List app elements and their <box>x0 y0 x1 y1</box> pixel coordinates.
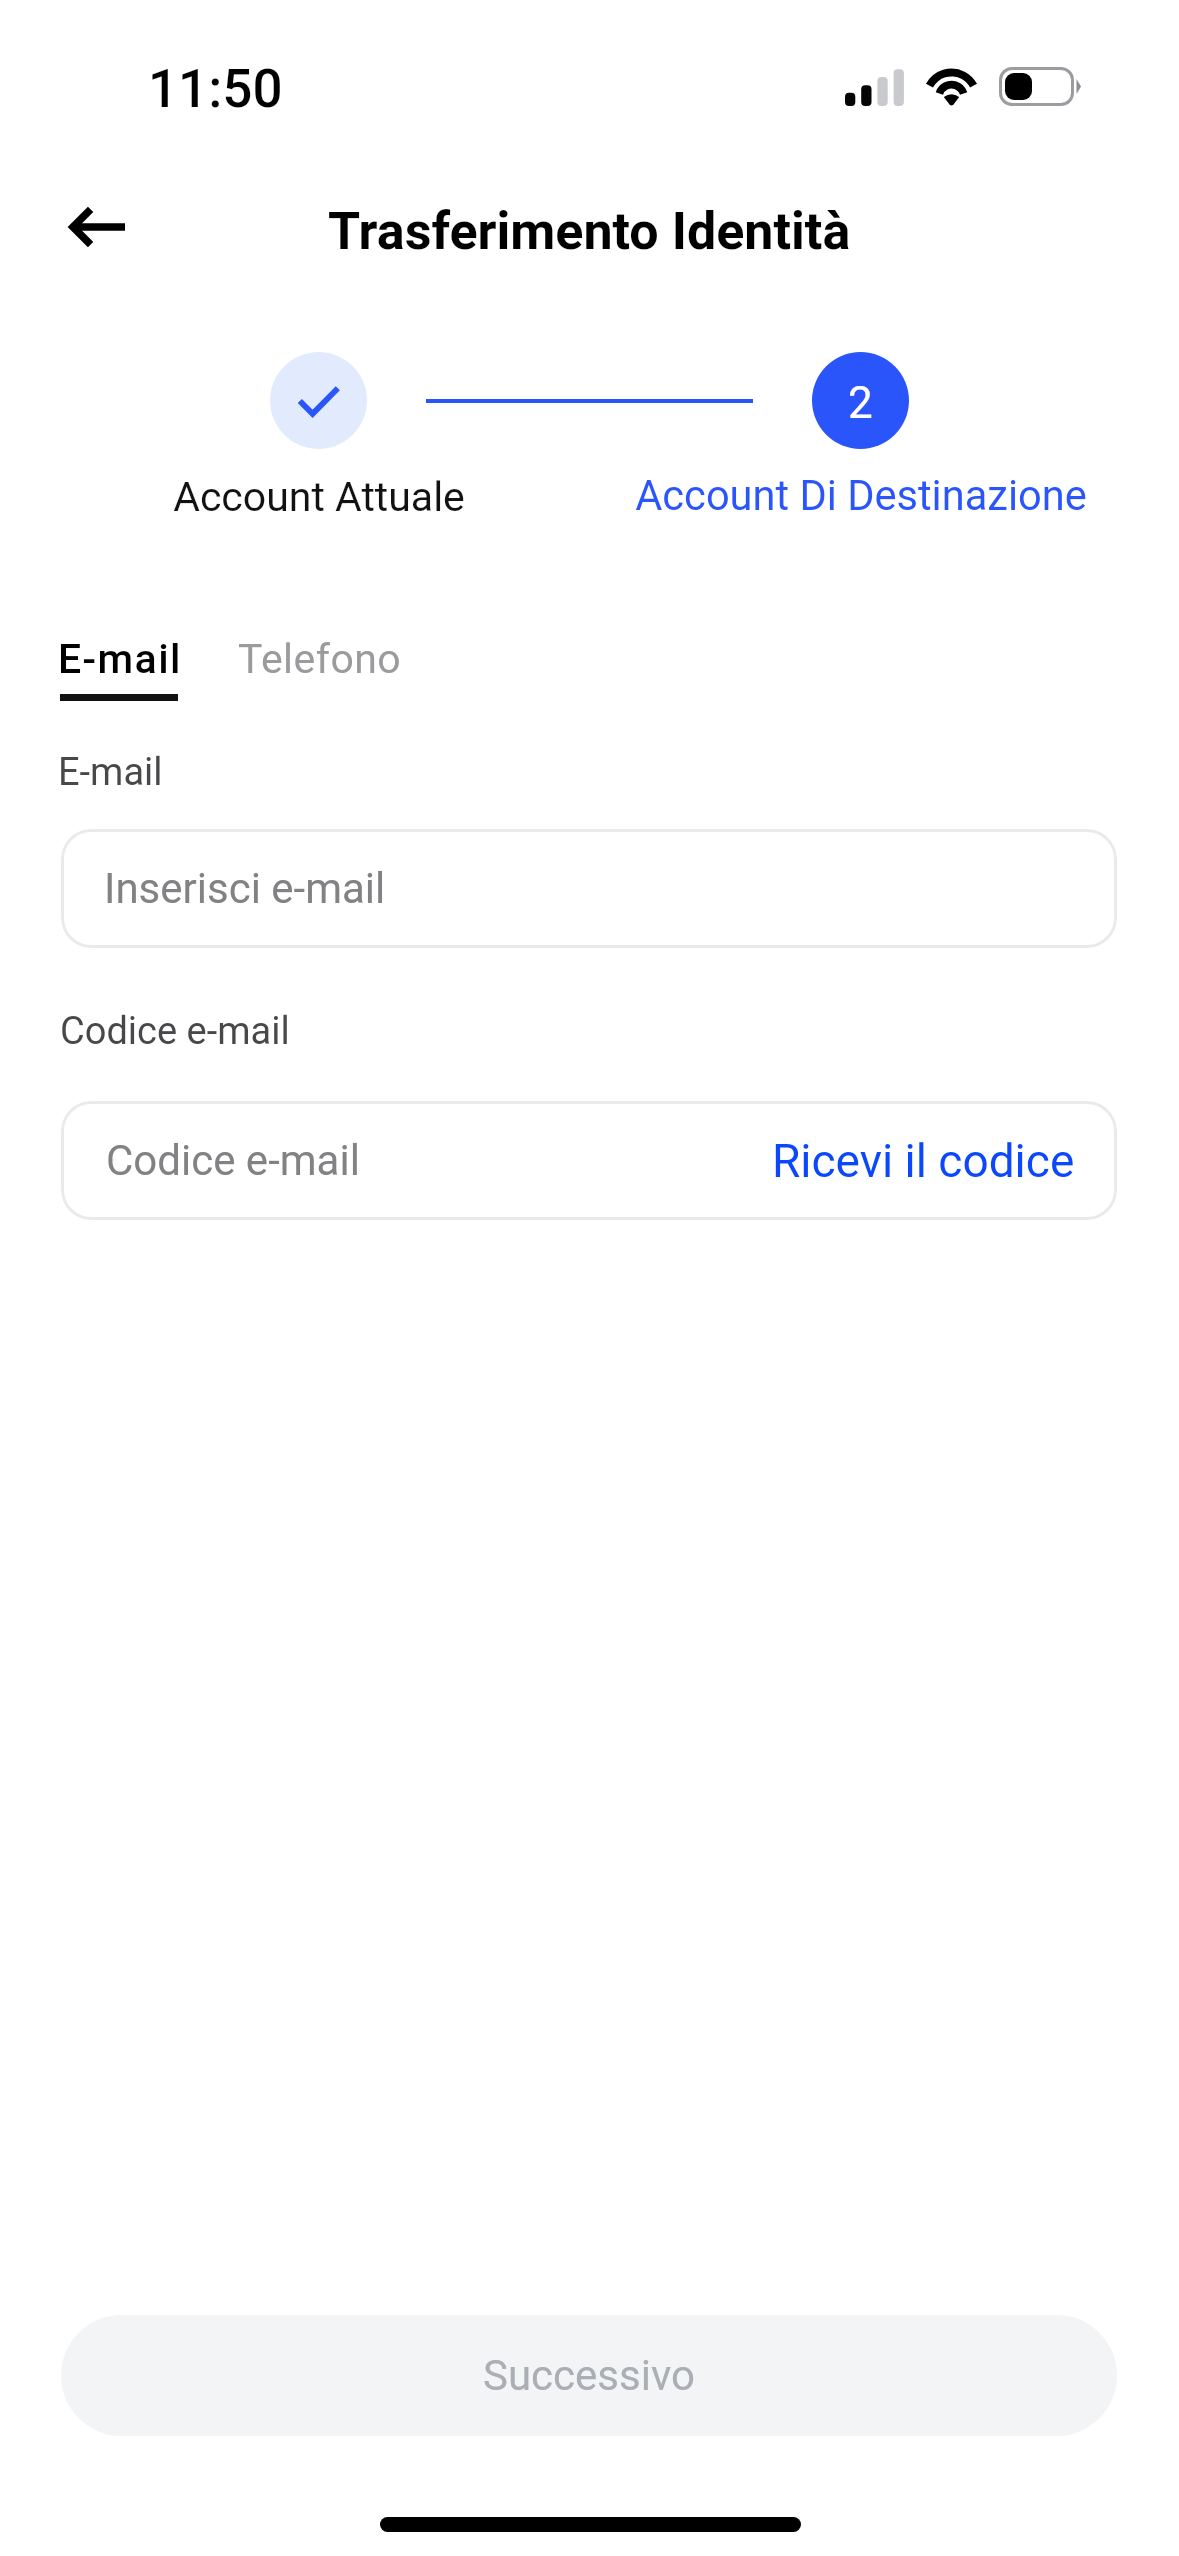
button[interactable]: Passo 2, Account Di Destinazione <box>812 352 909 449</box>
staticText: E-mail <box>58 635 182 683</box>
staticText: Codice e-mail <box>60 1009 290 1054</box>
staticText: E-mail <box>58 750 163 795</box>
button[interactable]: E-mail <box>58 635 182 683</box>
button[interactable]: Ricevi il codice <box>726 1114 1117 1208</box>
staticText: Trasferimento Identità <box>328 201 851 262</box>
button[interactable]: Account Attuale, completato <box>270 352 367 449</box>
staticText: Successivo <box>483 2351 695 2400</box>
staticText: Account Di Destinazione <box>635 471 1087 520</box>
button[interactable]: Inserisci e-mail <box>61 829 1117 948</box>
staticText: Inserisci e-mail <box>104 864 386 913</box>
button[interactable]: Telefono <box>238 635 402 683</box>
button[interactable]: Codice e-mail <box>61 1136 360 1185</box>
button[interactable]: Indietro <box>57 185 141 269</box>
staticText: Ricevi il codice <box>772 1134 1075 1188</box>
button[interactable]: Successivo <box>61 2315 1117 2436</box>
staticText: Telefono <box>238 635 402 683</box>
staticText: 2 <box>848 377 873 429</box>
staticText: Account Attuale <box>173 473 465 521</box>
staticText: 11:50 <box>148 58 283 120</box>
